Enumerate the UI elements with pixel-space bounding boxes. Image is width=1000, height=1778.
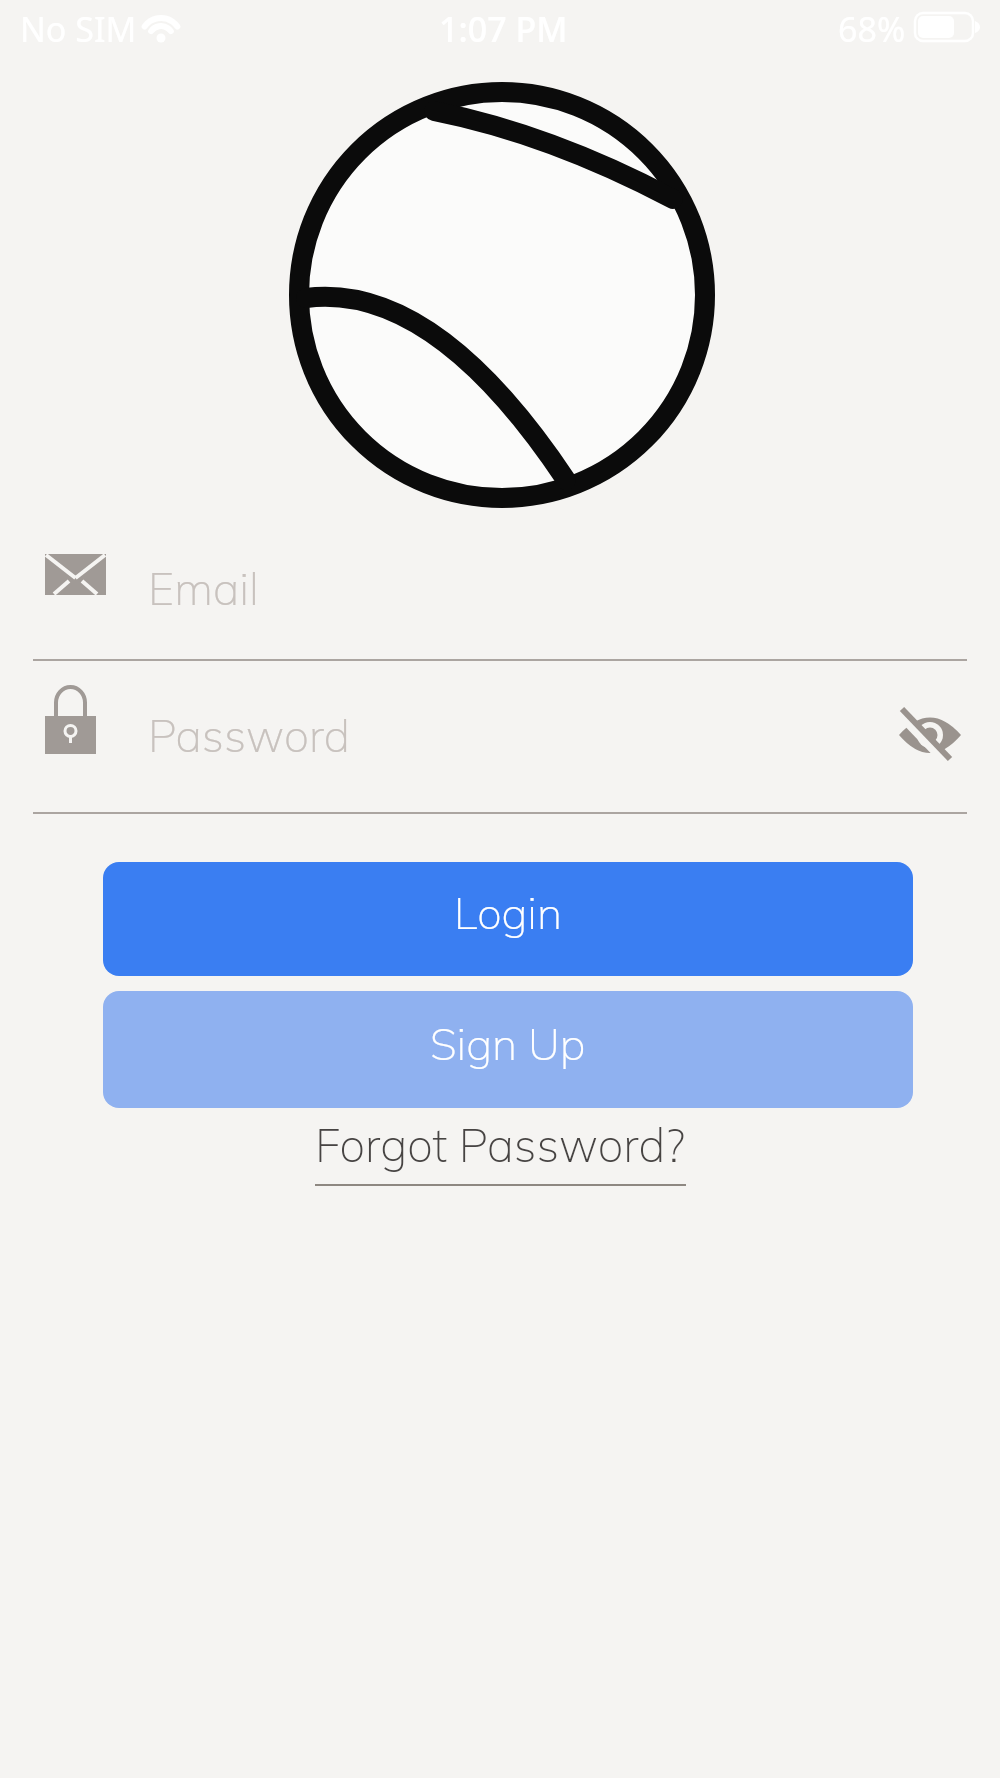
staticText: 1:07 PM (439, 6, 568, 52)
button[interactable]: Login (103, 862, 913, 976)
staticText: No SIM (20, 6, 137, 52)
button[interactable]: Forgot Password? (315, 1116, 686, 1186)
staticText: Email (148, 560, 259, 616)
button[interactable]: Password (0, 662, 1000, 812)
staticText: Sign Up (430, 1016, 586, 1071)
button[interactable]: Sign Up (103, 991, 913, 1108)
staticText: 68% (838, 6, 906, 52)
button[interactable]: Email (0, 538, 1000, 658)
staticText: Login (454, 885, 563, 940)
button[interactable] (880, 682, 980, 792)
staticText: Forgot Password? (315, 1116, 686, 1174)
staticText: Password (148, 707, 351, 763)
